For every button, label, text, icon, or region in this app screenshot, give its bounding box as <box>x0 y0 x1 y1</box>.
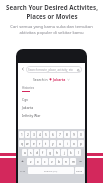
button[interactable]: k <box>68 149 74 156</box>
button[interactable]: Jakarta <box>22 103 85 111</box>
staticText: i <box>67 142 68 146</box>
staticText: u <box>59 142 61 146</box>
button[interactable]: g <box>47 149 53 156</box>
button[interactable]: Search movie, place, activity, etc <box>26 66 82 73</box>
button[interactable]: v <box>49 158 55 165</box>
button[interactable]: Symbols <box>19 167 27 174</box>
button[interactable]: Infinity War <box>22 111 85 119</box>
staticText: p <box>80 142 82 146</box>
other: Search <box>77 69 80 72</box>
button[interactable]: Shift <box>19 158 26 165</box>
staticText: 9 <box>73 133 75 137</box>
button[interactable]: Backspace <box>77 158 84 165</box>
staticText: ?123 <box>20 169 26 172</box>
staticText: 7 <box>59 133 61 137</box>
staticText: j <box>64 151 65 155</box>
staticText: m <box>72 160 75 164</box>
button[interactable]: b <box>56 158 62 165</box>
button[interactable]: 6 <box>50 131 56 138</box>
button[interactable]: English (US) <box>28 167 74 174</box>
button[interactable]: c <box>42 158 48 165</box>
button[interactable]: 0 <box>78 131 84 138</box>
staticText: g <box>49 151 51 155</box>
staticText: q <box>21 142 23 146</box>
button[interactable]: l <box>75 149 81 156</box>
button[interactable]: a <box>22 149 27 156</box>
button[interactable]: e <box>31 140 36 147</box>
button[interactable]: 4 <box>37 131 42 138</box>
button[interactable]: w <box>25 140 30 147</box>
staticText: e <box>33 142 35 146</box>
staticText: 0 <box>80 133 82 137</box>
staticText: z <box>30 160 32 164</box>
staticText: l <box>78 151 79 155</box>
staticText: Search Your Desired Activites, Places or… <box>6 3 98 21</box>
staticText: 5 <box>45 133 47 137</box>
button[interactable]: 7 <box>57 131 63 138</box>
button[interactable]: q <box>19 140 24 147</box>
button[interactable]: Search in <box>18 75 85 84</box>
button[interactable]: 2 <box>25 131 30 138</box>
staticText: r <box>39 142 41 146</box>
staticText: Histories <box>22 86 35 90</box>
staticText: a <box>24 151 26 155</box>
staticText: k <box>70 151 72 155</box>
staticText: 8 <box>66 133 68 137</box>
button[interactable]: r <box>37 140 42 147</box>
staticText: Infinity War <box>22 113 41 118</box>
button[interactable]: 3 <box>31 131 36 138</box>
button[interactable]: 8 <box>64 131 70 138</box>
button[interactable]: i <box>64 140 70 147</box>
staticText: 1 <box>21 133 23 137</box>
staticText: Jakarta <box>53 77 66 82</box>
staticText: Search movie, place, activity, etc <box>28 68 73 72</box>
staticText: English (US) <box>44 169 58 172</box>
button[interactable]: h <box>54 149 60 156</box>
button[interactable]: j <box>61 149 67 156</box>
button[interactable]: t <box>43 140 49 147</box>
button[interactable]: p <box>78 140 84 147</box>
staticText: x <box>37 160 39 164</box>
button[interactable]: d <box>34 149 39 156</box>
staticText: 6 <box>52 133 54 137</box>
staticText: s <box>30 151 32 155</box>
staticText: d <box>36 151 38 155</box>
staticText: t <box>45 142 47 146</box>
staticText: b <box>58 160 60 164</box>
staticText: h <box>56 151 58 155</box>
button[interactable]: x <box>35 158 41 165</box>
button[interactable]: n <box>63 158 69 165</box>
staticText: Cari semua yang kamu suka dan temukan ak… <box>10 24 93 35</box>
staticText: v <box>51 160 53 164</box>
button[interactable]: 5 <box>43 131 49 138</box>
staticText: 4 <box>39 133 41 137</box>
button[interactable]: z <box>27 158 34 165</box>
other: Back <box>21 67 25 71</box>
staticText: Jakarta <box>22 105 34 110</box>
staticText: 3 <box>33 133 35 137</box>
button[interactable]: o <box>71 140 77 147</box>
button[interactable]: m <box>70 158 76 165</box>
button[interactable]: y <box>50 140 56 147</box>
button[interactable]: Cgv <box>22 95 85 103</box>
staticText: Search in <box>33 77 48 82</box>
staticText: n <box>65 160 67 164</box>
staticText: Cgv <box>22 97 28 102</box>
button[interactable]: Done <box>75 167 84 174</box>
staticText: w <box>26 142 29 146</box>
staticText: o <box>73 142 75 146</box>
staticText: c <box>44 160 46 164</box>
staticText: 2 <box>27 133 29 137</box>
button[interactable]: 9 <box>71 131 77 138</box>
button[interactable]: f <box>40 149 46 156</box>
staticText: Done <box>76 169 83 172</box>
button[interactable]: u <box>57 140 63 147</box>
button[interactable]: s <box>28 149 33 156</box>
staticText: y <box>52 142 54 146</box>
staticText: f <box>42 151 44 155</box>
button[interactable]: 1 <box>19 131 24 138</box>
